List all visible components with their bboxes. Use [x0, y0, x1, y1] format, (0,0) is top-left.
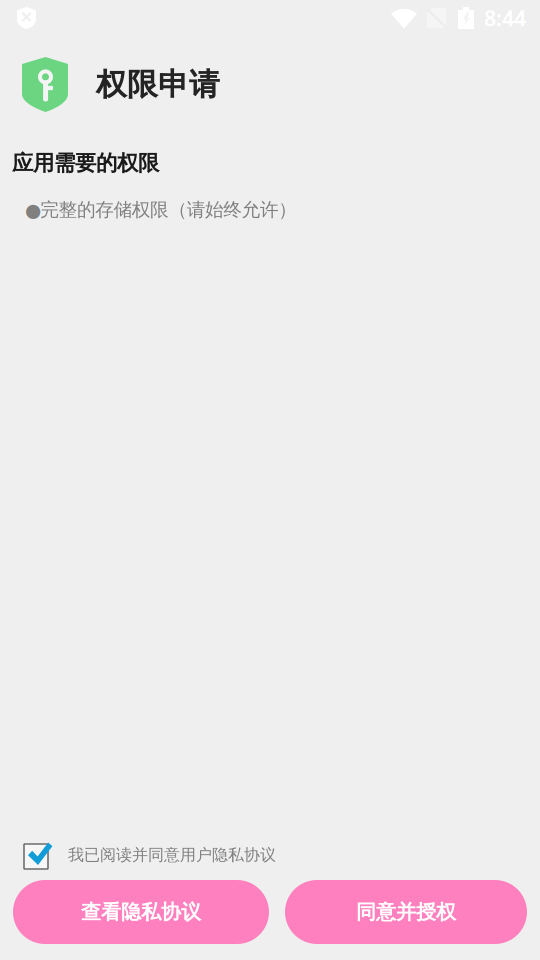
staticText: 我已阅读并同意用户隐私协议: [68, 845, 276, 865]
staticText: 查看隐私协议: [81, 900, 201, 924]
staticText: ●完整的存储权限（请始终允许）: [25, 198, 297, 221]
button[interactable]: 查看隐私协议: [13, 880, 269, 944]
button[interactable]: 我已阅读并同意用户隐私协议: [0, 829, 540, 869]
staticText: 同意并授权: [356, 900, 456, 924]
button[interactable]: 同意并授权: [285, 880, 527, 944]
staticText: 8:44: [484, 4, 526, 32]
staticText: 应用需要的权限: [12, 150, 159, 176]
staticText: 权限申请: [96, 66, 220, 103]
